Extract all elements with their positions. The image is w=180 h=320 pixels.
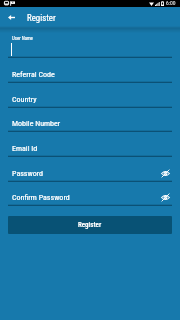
staticText: Country — [12, 95, 176, 104]
staticText: Password — [12, 169, 164, 178]
staticText: Mobile Number — [12, 119, 176, 128]
button[interactable]: User Name — [8, 33, 172, 58]
button[interactable]: Referral Code — [8, 58, 172, 83]
staticText: 6:00 — [166, 0, 176, 7]
button[interactable]: Email Id — [8, 132, 172, 157]
button[interactable]: Country — [8, 83, 172, 108]
button[interactable]: Register — [8, 216, 172, 234]
staticText: Referral Code — [12, 70, 176, 79]
staticText: Email Id — [12, 144, 176, 153]
button[interactable]: Show password — [159, 167, 171, 179]
staticText: Register — [78, 221, 102, 229]
button[interactable]: Back — [0, 7, 21, 28]
button[interactable]: Show password — [159, 191, 171, 203]
button[interactable]: Mobile Number — [8, 107, 172, 132]
button[interactable]: Password — [8, 157, 172, 182]
staticText: Confirm Password — [12, 193, 164, 202]
staticText: Register — [27, 13, 56, 23]
button[interactable]: Confirm Password — [8, 181, 172, 206]
staticText: User Name — [12, 36, 33, 42]
